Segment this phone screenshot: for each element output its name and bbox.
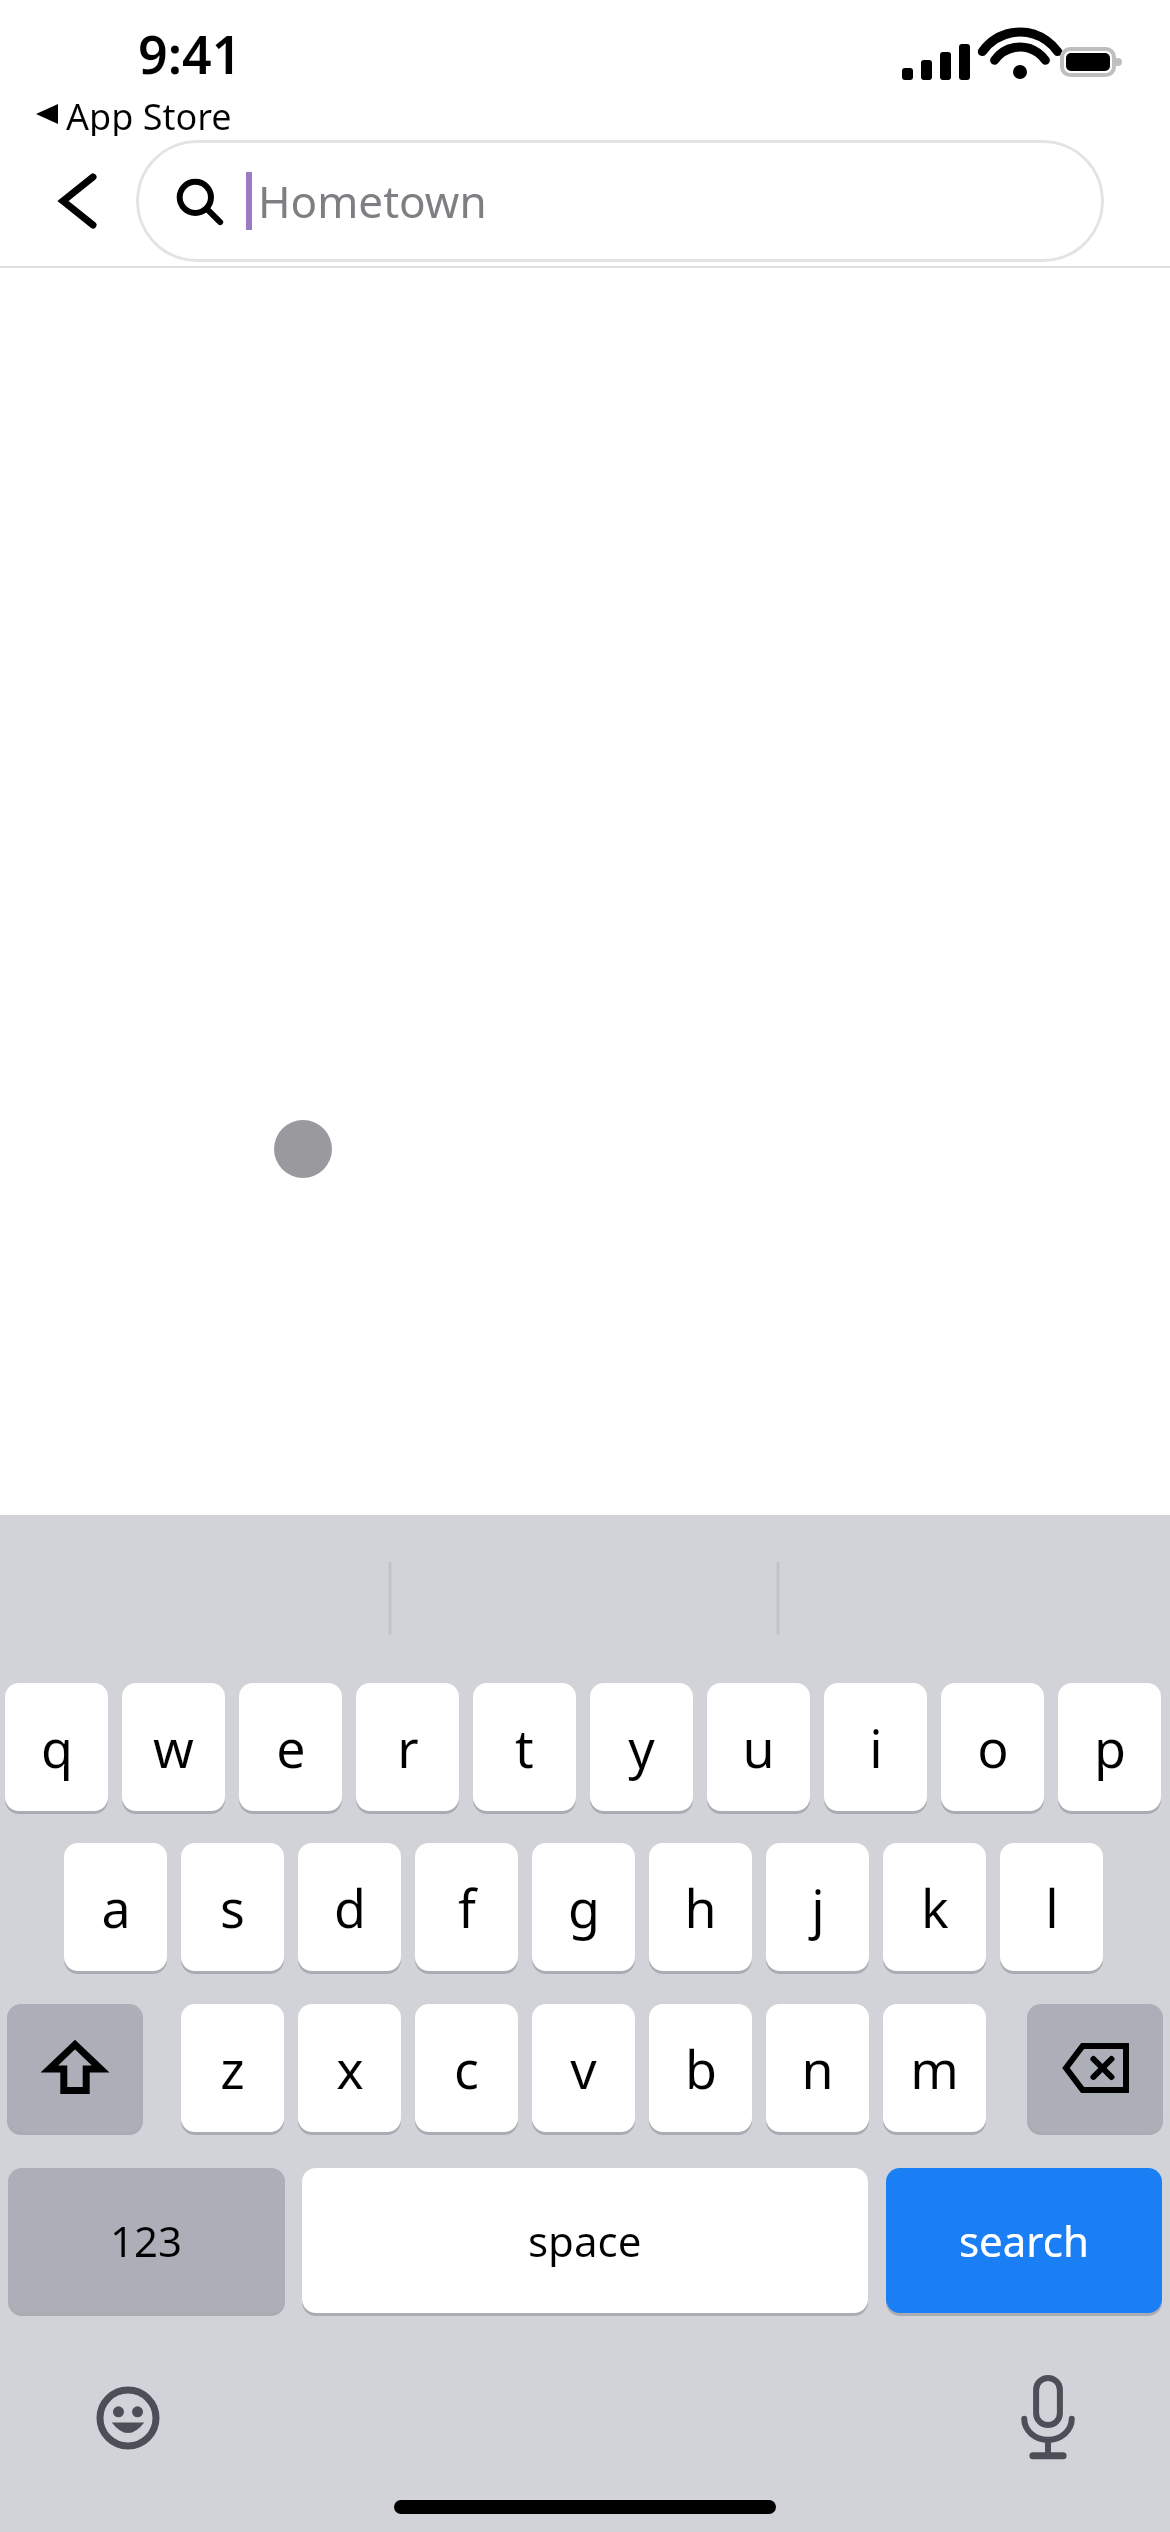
- button[interactable]: g: [532, 1843, 635, 1971]
- staticText: e: [276, 1712, 306, 1783]
- button[interactable]: b: [649, 2004, 752, 2132]
- staticText: h: [684, 1872, 717, 1943]
- button[interactable]: Emoji: [80, 2370, 176, 2466]
- staticText: u: [742, 1712, 775, 1783]
- staticText: n: [801, 2033, 834, 2104]
- button[interactable]: i: [824, 1683, 927, 1811]
- button[interactable]: Back: [40, 163, 116, 239]
- button[interactable]: e: [239, 1683, 342, 1811]
- button[interactable]: l: [1000, 1843, 1103, 1971]
- staticText: search: [959, 2212, 1089, 2269]
- staticText: 123: [110, 2212, 183, 2269]
- staticText: space: [528, 2212, 642, 2269]
- staticText: m: [910, 2033, 959, 2104]
- button[interactable]: v: [532, 2004, 635, 2132]
- button[interactable]: k: [883, 1843, 986, 1971]
- button[interactable]: p: [1058, 1683, 1161, 1811]
- staticText: v: [570, 2033, 597, 2104]
- button[interactable]: h: [649, 1843, 752, 1971]
- button[interactable]: m: [883, 2004, 986, 2132]
- button[interactable]: Hometown: [136, 140, 1104, 262]
- staticText: d: [334, 1872, 366, 1943]
- button[interactable]: search: [886, 2168, 1162, 2313]
- staticText: 9:41: [138, 18, 242, 89]
- staticText: s: [220, 1872, 245, 1943]
- button[interactable]: y: [590, 1683, 693, 1811]
- button[interactable]: o: [941, 1683, 1044, 1811]
- button[interactable]: c: [415, 2004, 518, 2132]
- staticText: r: [397, 1712, 419, 1783]
- button[interactable]: Backspace: [1027, 2004, 1163, 2132]
- staticText: w: [153, 1712, 194, 1783]
- staticText: z: [220, 2033, 245, 2104]
- staticText: y: [628, 1712, 655, 1783]
- button[interactable]: f: [415, 1843, 518, 1971]
- staticText: b: [685, 2033, 717, 2104]
- button[interactable]: Dictation: [1000, 2370, 1096, 2466]
- button[interactable]: q: [5, 1683, 108, 1811]
- staticText: Hometown: [258, 171, 487, 231]
- button[interactable]: 123: [8, 2168, 285, 2313]
- button[interactable]: z: [181, 2004, 284, 2132]
- staticText: t: [515, 1712, 534, 1783]
- button[interactable]: d: [298, 1843, 401, 1971]
- staticText: q: [41, 1712, 73, 1783]
- staticText: j: [811, 1872, 825, 1943]
- staticText: k: [921, 1872, 949, 1943]
- button[interactable]: s: [181, 1843, 284, 1971]
- staticText: o: [977, 1712, 1009, 1783]
- button[interactable]: w: [122, 1683, 225, 1811]
- staticText: x: [336, 2033, 364, 2104]
- staticText: a: [101, 1872, 131, 1943]
- button[interactable]: a: [64, 1843, 167, 1971]
- staticText: c: [454, 2033, 479, 2104]
- button[interactable]: App Store: [36, 92, 232, 136]
- staticText: g: [568, 1872, 600, 1943]
- button[interactable]: r: [356, 1683, 459, 1811]
- staticText: l: [1045, 1872, 1059, 1943]
- button[interactable]: x: [298, 2004, 401, 2132]
- button[interactable]: u: [707, 1683, 810, 1811]
- button[interactable]: Shift: [7, 2004, 143, 2132]
- button[interactable]: j: [766, 1843, 869, 1971]
- staticText: p: [1094, 1712, 1126, 1783]
- button[interactable]: space: [302, 2168, 868, 2313]
- button[interactable]: n: [766, 2004, 869, 2132]
- staticText: App Store: [66, 92, 232, 136]
- button[interactable]: t: [473, 1683, 576, 1811]
- staticText: f: [458, 1872, 476, 1943]
- staticText: i: [869, 1712, 883, 1783]
